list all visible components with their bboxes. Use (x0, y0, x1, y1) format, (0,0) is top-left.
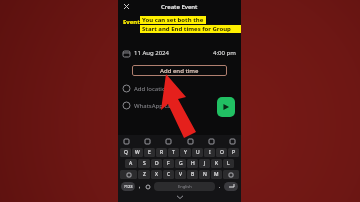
staticText: 11 Aug 2024 (134, 49, 169, 57)
staticText: WhatsApp call (134, 102, 174, 110)
button[interactable]: M (211, 170, 222, 179)
button[interactable]: W (132, 148, 143, 157)
staticText: M (214, 171, 219, 178)
staticText: 4:00 pm (213, 49, 236, 57)
button[interactable]: U (192, 148, 203, 157)
staticText: Add location (134, 85, 170, 93)
staticText: B (191, 171, 195, 178)
button[interactable]: WhatsApp call (118, 99, 241, 112)
staticText: T (172, 149, 175, 156)
button[interactable]: Keyboard tool (165, 138, 172, 145)
staticText: R (160, 149, 164, 156)
button[interactable]: 11 Aug 2024 (118, 46, 241, 60)
staticText: J (204, 160, 206, 167)
button[interactable]: O (216, 148, 227, 157)
button[interactable]: Add end time (132, 65, 227, 76)
staticText: Z (143, 171, 146, 178)
staticText: ?123 (124, 184, 133, 189)
button[interactable]: Keyboard tool (187, 138, 194, 145)
staticText: V (179, 171, 183, 178)
button[interactable]: Add location (118, 82, 241, 95)
staticText: English (178, 184, 192, 189)
button[interactable]: E (144, 148, 155, 157)
staticText: You can set both the (142, 16, 204, 24)
staticText: Q (124, 149, 128, 156)
staticText: D (155, 160, 159, 167)
button[interactable]: I (204, 148, 215, 157)
button[interactable]: N (199, 170, 210, 179)
button[interactable]: Keyboard tool (144, 138, 151, 145)
staticText: O (220, 149, 224, 156)
staticText: G (179, 160, 183, 167)
button[interactable]: F (163, 159, 174, 168)
button[interactable]: Close (122, 2, 131, 11)
button[interactable]: X (151, 170, 162, 179)
staticText: Create Event (161, 3, 198, 11)
button[interactable]: Emoji (144, 182, 152, 191)
button[interactable]: Keyboard tool (208, 138, 215, 145)
staticText: L (227, 160, 230, 167)
staticText: Y (184, 149, 187, 156)
button[interactable]: Symbols (121, 182, 135, 191)
staticText: C (167, 171, 171, 178)
staticText: E (148, 149, 151, 156)
button[interactable]: A (125, 159, 137, 168)
staticText: S (143, 160, 146, 167)
button[interactable]: Enter (224, 182, 238, 191)
button[interactable]: Z (138, 170, 150, 179)
staticText: H (191, 160, 195, 167)
button[interactable]: S (138, 159, 150, 168)
staticText: F (167, 160, 170, 167)
button[interactable]: C (163, 170, 174, 179)
staticText: I (209, 149, 211, 156)
button[interactable]: D (151, 159, 162, 168)
button[interactable]: . (217, 182, 222, 191)
button[interactable]: R (156, 148, 167, 157)
button[interactable]: G (175, 159, 186, 168)
staticText: Add end time (160, 67, 199, 75)
button[interactable]: V (175, 170, 186, 179)
staticText: U (196, 149, 200, 156)
button[interactable]: Backspace (223, 170, 239, 179)
button[interactable]: , (137, 182, 142, 191)
button[interactable]: Send (217, 97, 235, 117)
staticText: X (155, 171, 158, 178)
button[interactable]: H (187, 159, 198, 168)
button[interactable]: P (228, 148, 239, 157)
button[interactable]: L (223, 159, 234, 168)
staticText: K (215, 160, 219, 167)
staticText: , (139, 183, 141, 190)
button[interactable]: Q (120, 148, 131, 157)
staticText: Start and End times for Group Events (142, 25, 239, 33)
button[interactable]: Y (180, 148, 191, 157)
button[interactable]: J (199, 159, 210, 168)
button[interactable]: B (187, 170, 198, 179)
staticText: W (135, 149, 140, 156)
staticText: P (232, 149, 236, 156)
staticText: Event (123, 18, 140, 26)
button[interactable]: English (154, 182, 215, 191)
staticText: N (203, 171, 207, 178)
button[interactable]: Shift (120, 170, 137, 179)
button[interactable]: K (211, 159, 222, 168)
button[interactable]: Keyboard tool (229, 138, 236, 145)
staticText: A (129, 160, 133, 167)
button[interactable]: T (168, 148, 179, 157)
button[interactable]: Keyboard tool (123, 138, 130, 145)
staticText: . (219, 183, 221, 190)
